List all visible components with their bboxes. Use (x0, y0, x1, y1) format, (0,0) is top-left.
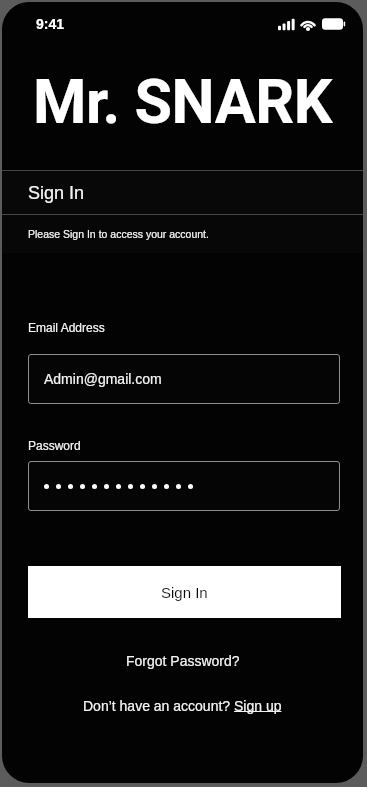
staticText: Mr. SNARK (33, 66, 332, 137)
staticText: 9:41 (36, 16, 65, 32)
staticText: Password (28, 439, 81, 452)
staticText: Sign In (28, 183, 85, 203)
button[interactable]: Forgot Password? (126, 653, 240, 669)
staticText: Sign In (161, 584, 208, 601)
staticText: Don’t have an account? Sign up (83, 698, 282, 714)
staticText: Forgot Password? (126, 653, 240, 669)
staticText: Please Sign In to access your account. (28, 228, 209, 240)
button[interactable] (28, 461, 340, 511)
button[interactable]: Don’t have an account? Sign up (83, 698, 282, 714)
button[interactable]: Sign In (28, 566, 341, 618)
button[interactable]: Admin@gmail.com (28, 354, 340, 404)
staticText: Admin@gmail.com (44, 371, 162, 387)
staticText: Email Address (28, 321, 105, 334)
